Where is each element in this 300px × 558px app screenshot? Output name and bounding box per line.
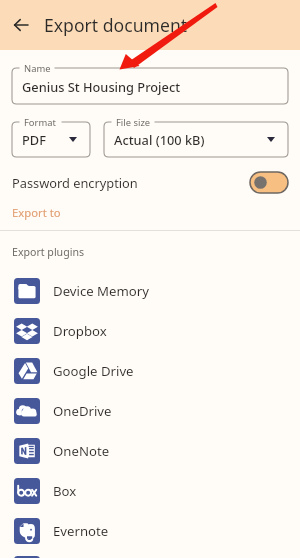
- staticText: Device Memory: [53, 282, 149, 300]
- button[interactable]: Dropbox: [0, 311, 300, 351]
- button[interactable]: Google Drive: [0, 351, 300, 391]
- staticText: Dropbox: [53, 322, 107, 340]
- staticText: File size: [116, 116, 151, 129]
- button[interactable]: Device Memory: [0, 271, 300, 311]
- staticText: Export plugins: [12, 245, 85, 259]
- staticText: Format: [24, 116, 56, 129]
- button[interactable]: OneDrive: [0, 391, 300, 431]
- staticText: PDF: [22, 131, 46, 148]
- staticText: Export to: [12, 205, 61, 220]
- button[interactable]: Evernote: [0, 511, 300, 551]
- staticText: Genius St Housing Project: [22, 78, 181, 95]
- button[interactable]: More plugins: [14, 556, 40, 558]
- staticText: Google Drive: [53, 362, 134, 380]
- button[interactable]: Back: [0, 4, 42, 46]
- button[interactable]: OneNote: [0, 431, 300, 471]
- staticText: Password encryption: [12, 174, 138, 191]
- staticText: OneDrive: [53, 402, 112, 420]
- button[interactable]: Format: [12, 122, 90, 157]
- staticText: Actual (100 kB): [114, 131, 205, 148]
- button[interactable]: Password encryption: [0, 170, 300, 194]
- button[interactable]: Box: [0, 471, 300, 511]
- button[interactable]: Name: [12, 68, 288, 104]
- staticText: Name: [24, 62, 51, 75]
- staticText: Box: [53, 482, 77, 500]
- button[interactable]: File size: [104, 122, 288, 157]
- staticText: Export document: [44, 13, 188, 37]
- button[interactable]: Password encryption toggle: [250, 172, 288, 193]
- staticText: OneNote: [53, 442, 110, 460]
- staticText: Evernote: [53, 522, 109, 540]
